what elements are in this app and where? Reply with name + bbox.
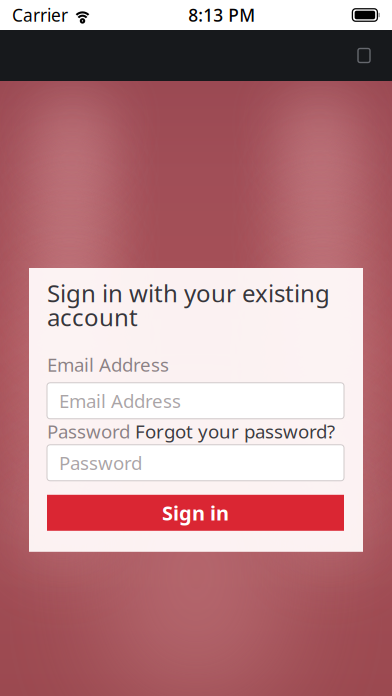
staticText: 8:13 PM (188, 3, 255, 26)
staticText: Forgot your password? (135, 419, 335, 444)
staticText: Email Address (47, 352, 169, 377)
button[interactable]: Forgot your password? (135, 419, 335, 444)
staticText: Sign in with your existing (47, 277, 330, 309)
button[interactable]: Sign in (47, 495, 344, 531)
staticText: Email Address (59, 388, 181, 413)
staticText: Carrier (12, 3, 68, 26)
staticText: Sign in (162, 499, 229, 526)
button[interactable]: Menu (347, 37, 381, 73)
staticText: account (47, 301, 138, 333)
staticText: Password (59, 450, 142, 475)
staticText: Password (47, 419, 130, 444)
